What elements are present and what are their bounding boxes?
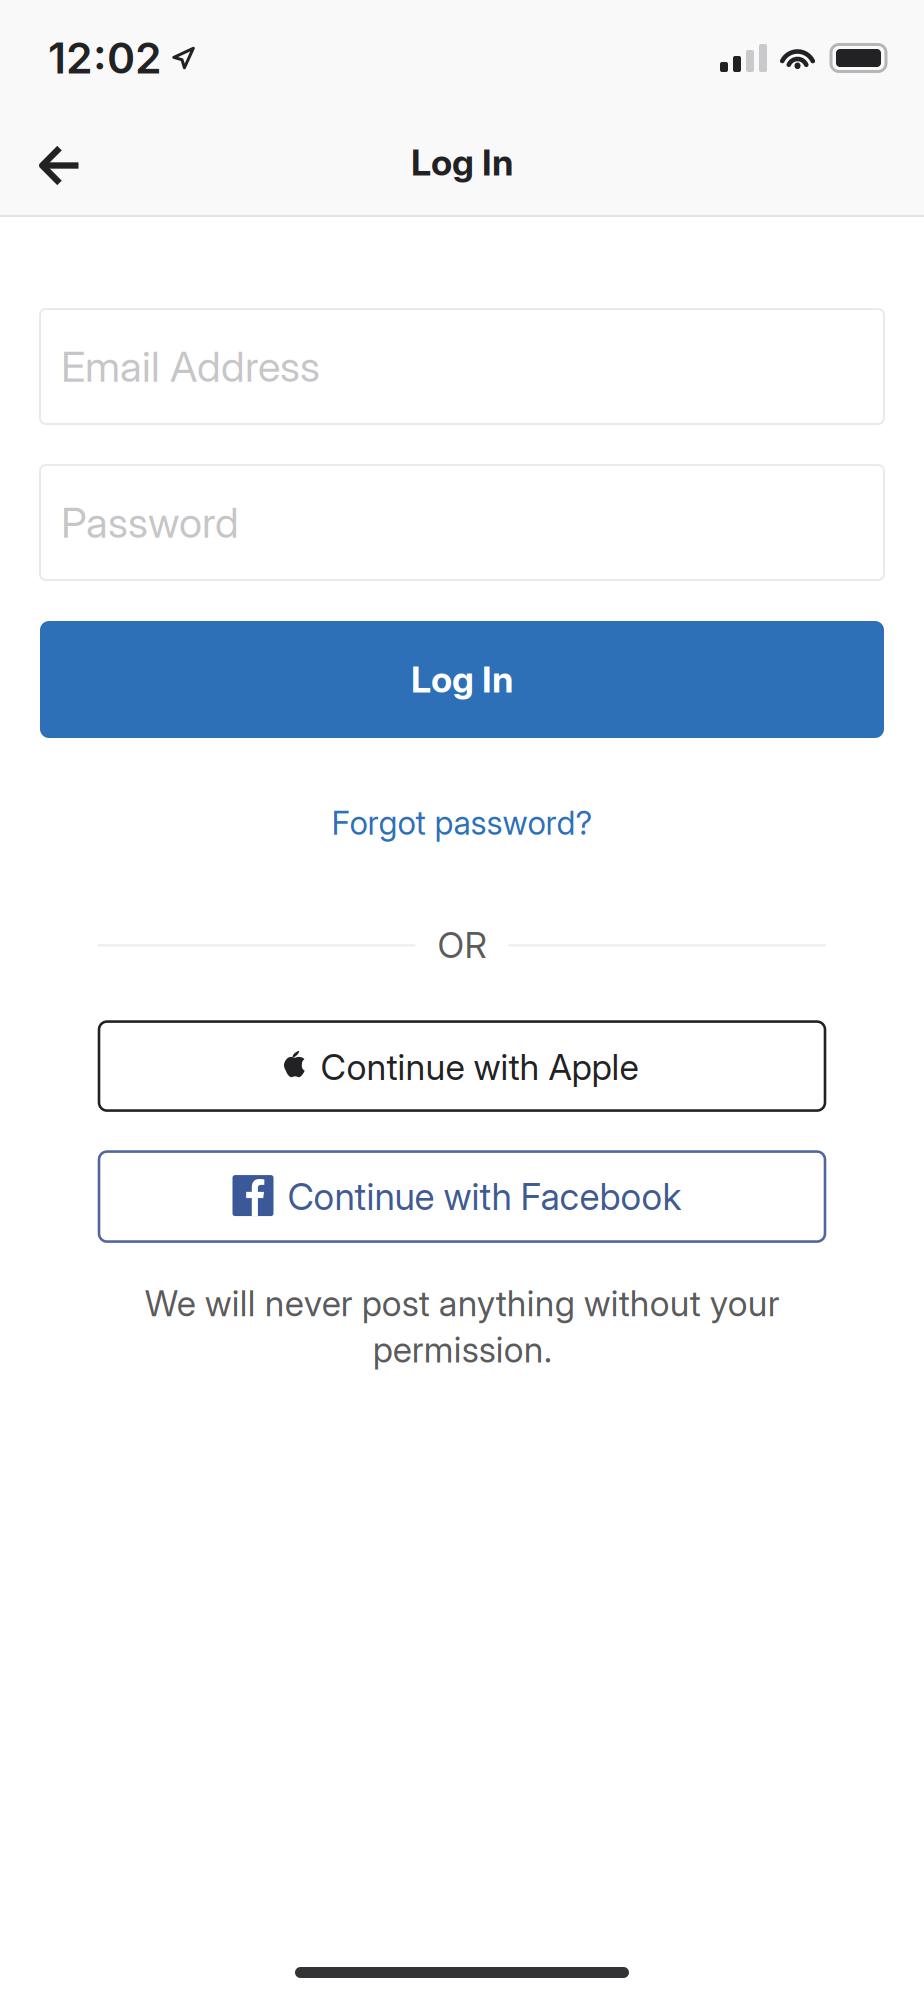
button[interactable]: Log In [40, 621, 884, 738]
button[interactable]: Continue with Apple [99, 1022, 825, 1111]
staticText: Continue with Facebook [287, 1174, 681, 1219]
staticText: 12:02 [48, 32, 162, 84]
staticText: Password [61, 497, 239, 548]
staticText: Log In [411, 658, 513, 701]
staticText: Continue with Apple [320, 1046, 638, 1088]
button[interactable]: Back [0, 116, 119, 215]
staticText: Email Address [61, 341, 320, 392]
staticText: We will never post anything without your… [144, 1283, 779, 1371]
staticText: OR [437, 924, 486, 967]
staticText: Forgot password? [331, 803, 592, 842]
button[interactable]: Continue with Facebook [99, 1152, 825, 1242]
staticText: Log In [411, 141, 513, 184]
button[interactable]: Forgot password? [40, 781, 884, 865]
